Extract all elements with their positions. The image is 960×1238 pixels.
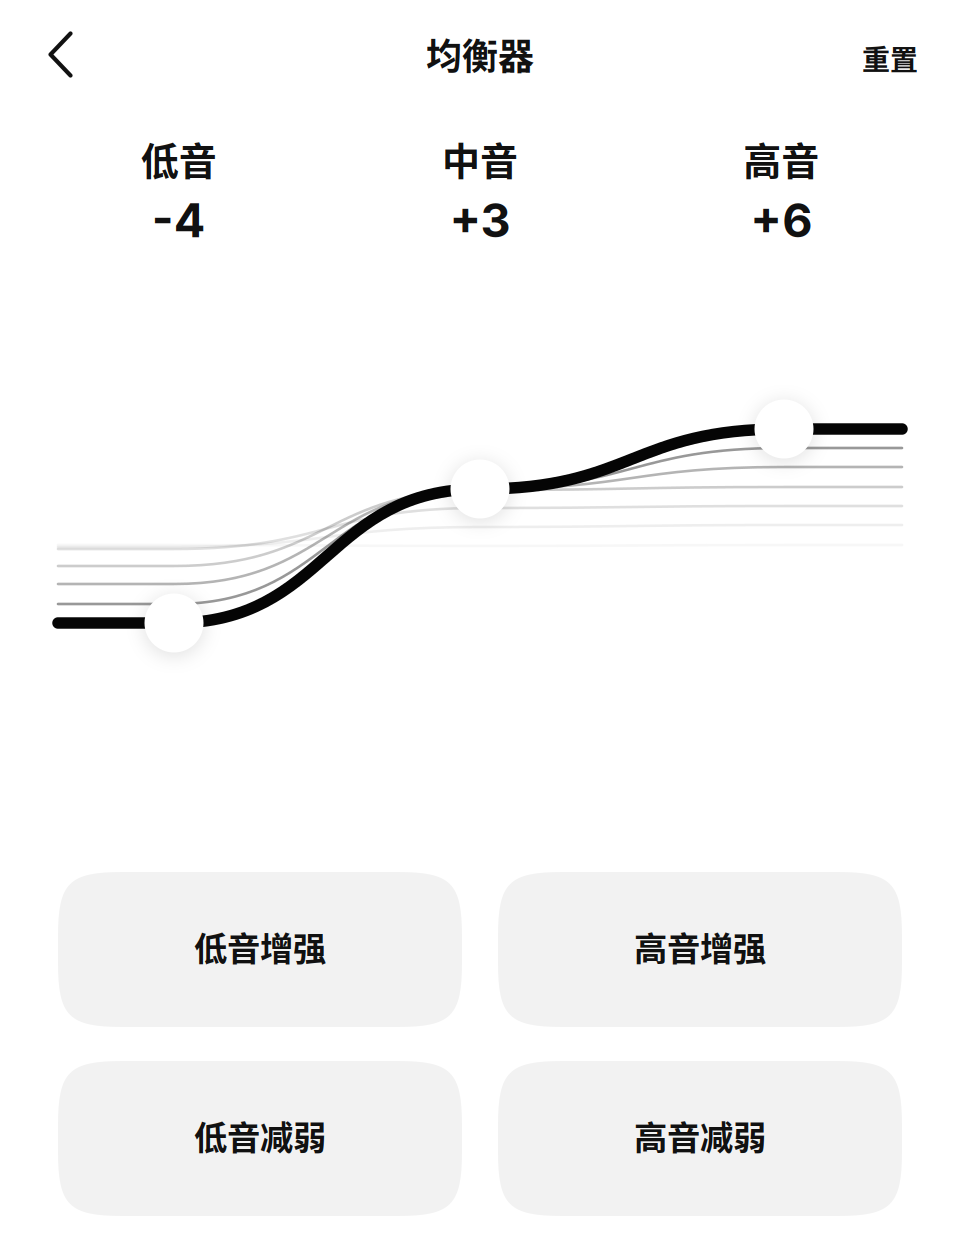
staticText: +3: [449, 192, 510, 248]
button[interactable]: 低音减弱: [58, 1061, 462, 1216]
button[interactable]: 高音增强: [498, 872, 902, 1027]
button[interactable]: 高音滑块: [754, 399, 813, 458]
staticText: 低音增强: [194, 922, 326, 971]
button[interactable]: 低音增强: [58, 872, 462, 1027]
staticText: 高音: [743, 131, 819, 186]
button[interactable]: 低音滑块: [144, 593, 203, 652]
staticText: 中音: [442, 131, 518, 186]
staticText: 低音减弱: [194, 1111, 326, 1160]
staticText: 低音: [141, 131, 217, 186]
staticText: 高音减弱: [634, 1111, 766, 1160]
staticText: -4: [152, 192, 206, 248]
button[interactable]: 重置: [844, 16, 936, 92]
staticText: 均衡器: [426, 28, 534, 80]
button[interactable]: 返回: [27, 16, 91, 92]
button[interactable]: 中音滑块: [450, 459, 509, 518]
staticText: 高音增强: [634, 922, 766, 971]
button[interactable]: 高音减弱: [498, 1061, 902, 1216]
staticText: +6: [750, 192, 812, 248]
staticText: 重置: [862, 38, 918, 78]
